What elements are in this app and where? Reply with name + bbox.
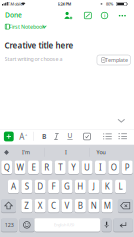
staticText: Template	[105, 56, 128, 64]
staticText: C	[51, 200, 56, 211]
staticText: B	[42, 132, 46, 141]
staticText: O	[111, 162, 117, 173]
button[interactable]: I'm	[12, 147, 40, 158]
button[interactable]: Emoji	[19, 218, 34, 232]
staticText: X	[38, 200, 43, 211]
staticText: D	[37, 181, 43, 192]
button[interactable]: A	[8, 180, 19, 193]
button[interactable]: S	[21, 180, 32, 193]
staticText: L	[118, 181, 122, 192]
button[interactable]: Return	[113, 218, 133, 232]
button[interactable]: Numbered list	[118, 133, 127, 140]
button[interactable]: K	[102, 180, 113, 193]
staticText: F	[52, 181, 56, 192]
button[interactable]: Italic	[54, 133, 59, 140]
staticText: G	[64, 181, 70, 192]
staticText: A	[11, 181, 16, 192]
staticText: P	[125, 162, 130, 173]
staticText: I'm	[22, 149, 30, 156]
button[interactable]: Delete	[118, 199, 133, 212]
staticText: J	[93, 181, 95, 192]
button[interactable]: Dictate	[102, 218, 111, 232]
staticText: U	[67, 131, 72, 140]
button[interactable]: Space	[34, 218, 100, 232]
staticText: You	[96, 149, 105, 156]
staticText: M	[104, 200, 111, 211]
staticText: Creative title here	[4, 40, 73, 51]
staticText: T	[58, 162, 62, 173]
button[interactable]: O	[108, 161, 119, 174]
button[interactable]: Q	[1, 161, 12, 174]
button[interactable]: Y	[68, 161, 79, 174]
button[interactable]: 123	[1, 218, 17, 232]
button[interactable]: F	[48, 180, 59, 193]
button[interactable]: Info	[101, 12, 108, 19]
staticText: English (US)	[54, 222, 74, 227]
staticText: S	[25, 181, 29, 192]
button[interactable]: I	[95, 161, 106, 174]
staticText: W	[17, 162, 24, 173]
button[interactable]: X	[35, 199, 46, 212]
button[interactable]: Dismiss	[117, 119, 125, 123]
button[interactable]: I	[52, 147, 80, 158]
button[interactable]: R	[41, 161, 52, 174]
staticText: V	[64, 200, 69, 211]
button[interactable]: M	[102, 199, 113, 212]
button[interactable]: P	[122, 161, 133, 174]
button[interactable]: Reminder	[84, 12, 91, 19]
button[interactable]: C	[48, 199, 59, 212]
button[interactable]: Underline	[67, 132, 73, 140]
button[interactable]: V	[61, 199, 72, 212]
staticText: Start writing or choose a	[4, 55, 62, 63]
staticText: +	[25, 131, 27, 137]
staticText: Done	[5, 11, 22, 19]
button[interactable]: First Notebook	[4, 23, 48, 30]
button[interactable]: U	[82, 161, 92, 174]
button[interactable]: T	[55, 161, 66, 174]
staticText: R	[44, 162, 49, 173]
button[interactable]: Text style	[19, 132, 29, 141]
staticText: E	[31, 162, 35, 173]
button[interactable]: Checkbox	[84, 133, 90, 140]
button[interactable]: N	[88, 199, 99, 212]
staticText: i	[104, 12, 105, 19]
staticText: T-Mobile	[7, 1, 22, 6]
button[interactable]: Z	[21, 199, 32, 212]
button[interactable]: W	[15, 161, 25, 174]
button[interactable]: B	[75, 199, 86, 212]
button[interactable]: Insert	[4, 132, 13, 141]
button[interactable]: H	[75, 180, 86, 193]
button[interactable]: Share	[63, 11, 72, 19]
button[interactable]: Template	[97, 55, 130, 65]
staticText: I	[99, 162, 102, 173]
button[interactable]: Bold	[39, 132, 48, 141]
button[interactable]: D	[35, 180, 46, 193]
button[interactable]: Done	[3, 9, 23, 20]
button[interactable]: E	[28, 161, 39, 174]
staticText: 123	[5, 221, 14, 228]
staticText: Q	[4, 162, 10, 173]
staticText: 80%	[106, 1, 113, 6]
button[interactable]: Bulleted list	[103, 133, 112, 140]
button[interactable]: G	[61, 180, 72, 193]
staticText: H	[77, 181, 83, 192]
staticText: 6:24 PM	[57, 1, 71, 6]
staticText: N	[91, 200, 97, 211]
staticText: First Notebook	[9, 23, 45, 30]
staticText: I	[65, 149, 67, 156]
staticText: A	[19, 131, 24, 142]
staticText: K	[105, 181, 110, 192]
button[interactable]: More	[117, 12, 127, 20]
button[interactable]: Shift	[1, 199, 16, 212]
button[interactable]: L	[115, 180, 126, 193]
staticText: Z	[24, 200, 29, 211]
staticText: Y	[71, 162, 76, 173]
staticText: B	[78, 200, 83, 211]
staticText: U	[84, 162, 90, 173]
button[interactable]: You	[87, 147, 115, 158]
button[interactable]: J	[88, 180, 99, 193]
